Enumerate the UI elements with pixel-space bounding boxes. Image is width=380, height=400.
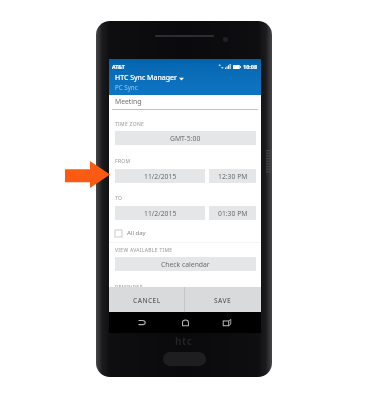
button[interactable]: Back [131, 312, 153, 333]
staticText: FROM [115, 158, 131, 165]
staticText: Check calendar [161, 260, 210, 269]
staticText: htc [175, 334, 193, 348]
staticText: 11/2/2015 [144, 172, 177, 181]
staticText: VIEW AVAILABLE TIME [115, 247, 173, 254]
staticText: HTC Sync Manager [115, 73, 177, 83]
button[interactable]: HTC Sync Manager [115, 73, 267, 97]
button[interactable]: CANCEL [109, 287, 184, 313]
staticText: TO [115, 195, 123, 202]
button[interactable]: 11/2/2015 [115, 206, 205, 220]
staticText: 01:30 PM [218, 209, 248, 218]
staticText: 12:30 PM [218, 172, 248, 181]
staticText: CANCEL [133, 296, 161, 305]
staticText: TIME ZONE [115, 121, 145, 128]
button[interactable]: Meeting [115, 96, 267, 107]
button[interactable]: 12:30 PM [209, 169, 256, 183]
staticText: PC Sync [115, 83, 138, 91]
button[interactable]: SAVE [185, 287, 261, 313]
staticText: SAVE [214, 296, 232, 305]
button[interactable]: 11/2/2015 [115, 169, 205, 183]
staticText: 10:08 [243, 63, 258, 70]
button[interactable]: GMT-5:00 [115, 131, 256, 145]
staticText: All day [127, 229, 146, 237]
button[interactable]: Check calendar [115, 257, 256, 271]
staticText: 11/2/2015 [144, 209, 177, 218]
staticText: Meeting [115, 97, 142, 106]
button[interactable]: Recent apps [216, 312, 238, 333]
button[interactable]: All day [115, 226, 256, 240]
button[interactable]: Home [174, 312, 196, 333]
button[interactable]: 01:30 PM [209, 206, 256, 220]
staticText: REMINDER [115, 284, 143, 291]
staticText: AT&T [112, 63, 125, 70]
staticText: GMT-5:00 [170, 134, 201, 143]
